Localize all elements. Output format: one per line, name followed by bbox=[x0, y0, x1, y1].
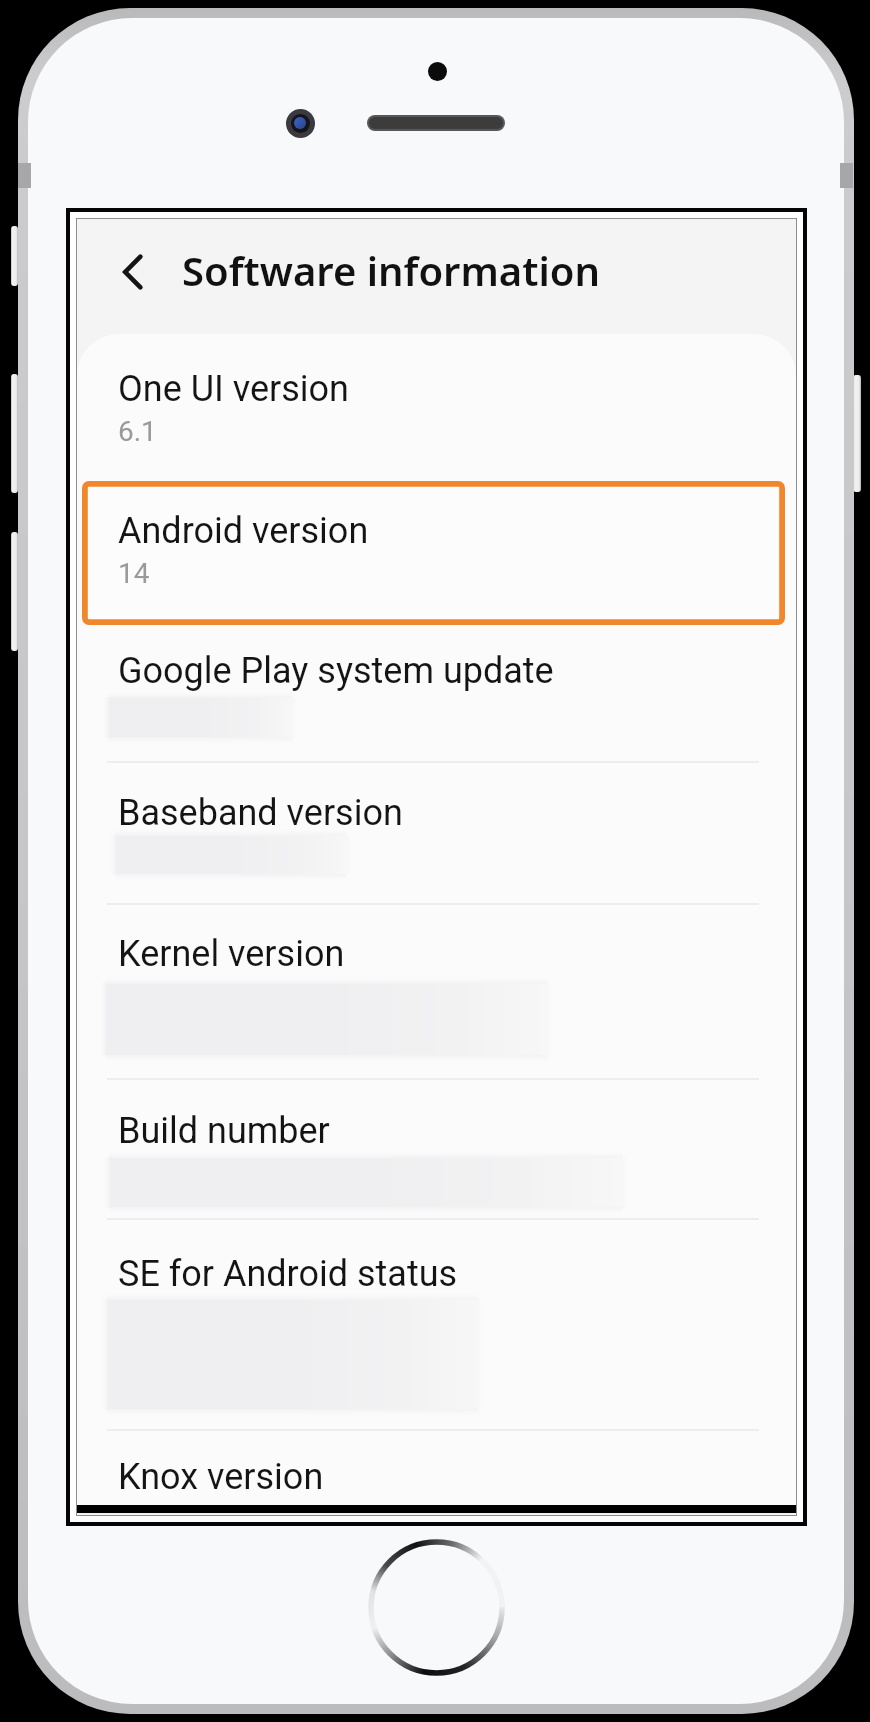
button[interactable]: Android version bbox=[82, 481, 785, 625]
staticText: Software information bbox=[182, 243, 600, 297]
staticText: 6.1 bbox=[118, 415, 157, 448]
staticText: Google Play system update bbox=[118, 650, 554, 692]
staticText: Android version bbox=[118, 510, 369, 552]
staticText: Knox version bbox=[118, 1456, 324, 1498]
staticText: Kernel version bbox=[118, 933, 345, 975]
button[interactable]: Back bbox=[97, 245, 159, 307]
staticText: One UI version bbox=[118, 368, 349, 410]
button[interactable]: One UI version bbox=[77, 349, 796, 480]
button[interactable] bbox=[77, 1220, 796, 1429]
staticText: Build number bbox=[118, 1110, 330, 1152]
button[interactable] bbox=[77, 763, 796, 903]
button[interactable] bbox=[77, 625, 796, 761]
staticText: SE for Android status bbox=[118, 1253, 458, 1295]
button[interactable] bbox=[77, 905, 796, 1078]
staticText: Baseband version bbox=[118, 792, 403, 834]
button[interactable] bbox=[77, 1080, 796, 1218]
staticText: 14 bbox=[118, 557, 150, 590]
button[interactable]: Knox version bbox=[77, 1431, 796, 1513]
